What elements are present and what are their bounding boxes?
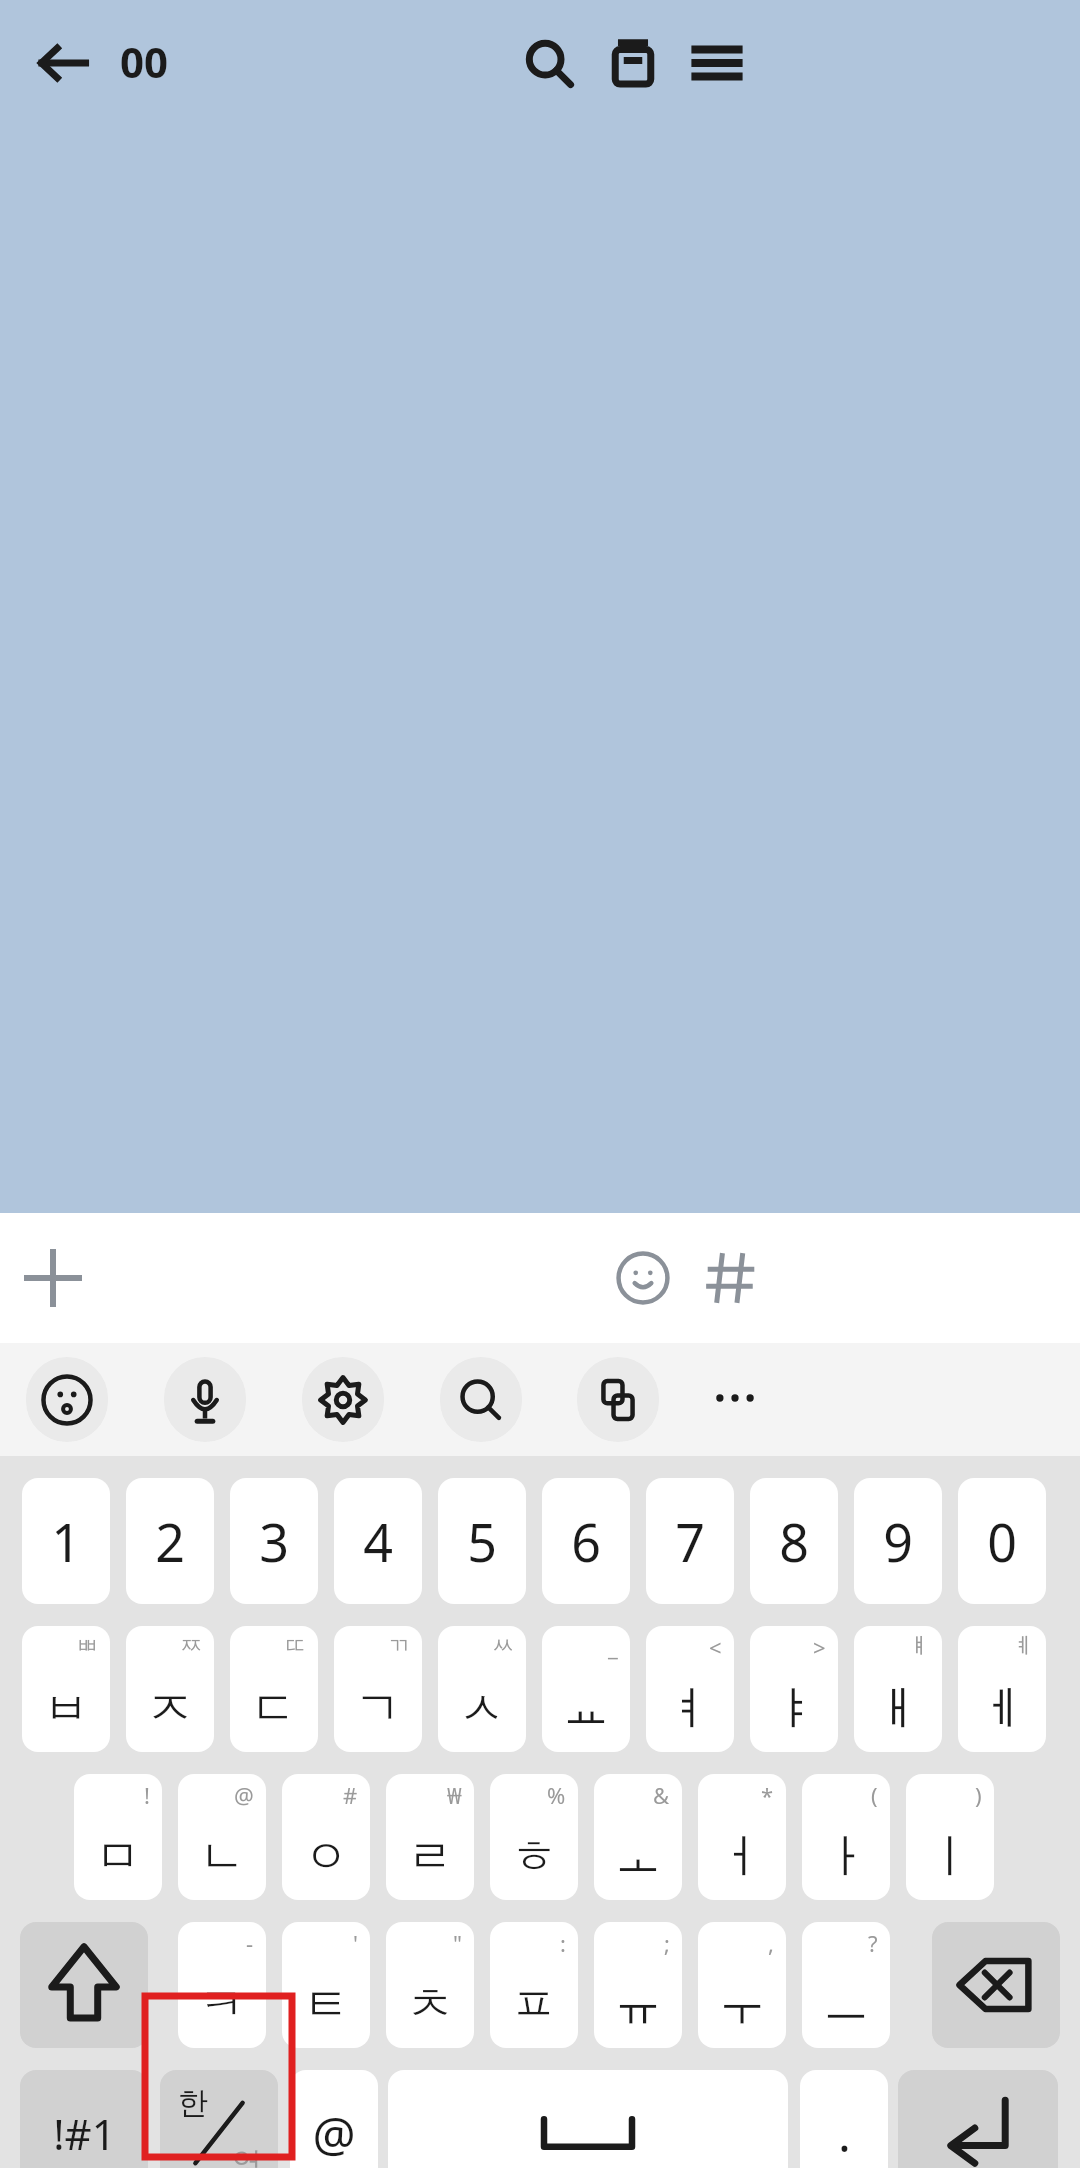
staticText: <: [709, 1632, 722, 1662]
staticText: 2: [155, 1506, 185, 1577]
staticText: ㅜ: [719, 1976, 765, 2034]
staticText: ㅂ: [43, 1680, 89, 1738]
button[interactable]: ㅉ: [126, 1626, 214, 1752]
button[interactable]: ㄸ: [230, 1626, 318, 1752]
button[interactable]: Enter: [898, 2070, 1058, 2168]
button[interactable]: Voice input: [164, 1357, 246, 1442]
button[interactable]: ㅒ: [854, 1626, 942, 1752]
button[interactable]: Space: [388, 2070, 788, 2168]
button[interactable]: 7: [646, 1478, 734, 1604]
staticText: ㅌ: [303, 1976, 349, 2034]
staticText: 4: [363, 1506, 393, 1577]
button[interactable]: 0: [958, 1478, 1046, 1604]
staticText: 7: [675, 1506, 705, 1577]
staticText: 00: [120, 33, 169, 90]
staticText: 8: [779, 1506, 809, 1577]
button[interactable]: -: [178, 1922, 266, 2048]
staticText: ㅛ: [563, 1680, 609, 1738]
button[interactable]: Back: [22, 22, 104, 104]
staticText: 0: [987, 1506, 1017, 1577]
staticText: ㅅ: [459, 1680, 505, 1738]
staticText: 영: [232, 2144, 262, 2168]
staticText: ㅇ: [303, 1828, 349, 1886]
staticText: ): [975, 1780, 982, 1810]
button[interactable]: 1: [22, 1478, 110, 1604]
button[interactable]: (: [802, 1774, 890, 1900]
staticText: ㅃ: [76, 1632, 98, 1660]
staticText: >: [813, 1632, 826, 1662]
staticText: ㅑ: [771, 1680, 817, 1738]
button[interactable]: ": [386, 1922, 474, 2048]
staticText: ㄴ: [199, 1828, 245, 1886]
button[interactable]: 2: [126, 1478, 214, 1604]
staticText: ㅁ: [95, 1828, 141, 1886]
staticText: ㅋ: [199, 1976, 245, 2034]
button[interactable]: *: [698, 1774, 786, 1900]
button[interactable]: .: [800, 2070, 888, 2168]
button[interactable]: ㄲ: [334, 1626, 422, 1752]
button[interactable]: &: [594, 1774, 682, 1900]
button[interactable]: :: [490, 1922, 578, 2048]
button[interactable]: Translate: [577, 1357, 659, 1442]
button[interactable]: Search: [440, 1357, 522, 1442]
button[interactable]: Settings: [302, 1357, 384, 1442]
button[interactable]: %: [490, 1774, 578, 1900]
staticText: ㅡ: [823, 1976, 869, 2034]
button[interactable]: 6: [542, 1478, 630, 1604]
staticText: %: [547, 1780, 566, 1810]
button[interactable]: Shift: [20, 1922, 148, 2048]
button[interactable]: Menu: [676, 22, 758, 104]
button[interactable]: Backspace: [932, 1922, 1060, 2048]
button[interactable]: ㅆ: [438, 1626, 526, 1752]
button[interactable]: Hashtag: [690, 1237, 772, 1319]
button[interactable]: ㅖ: [958, 1626, 1046, 1752]
button[interactable]: ': [282, 1922, 370, 2048]
button[interactable]: #: [282, 1774, 370, 1900]
staticText: @: [234, 1780, 254, 1810]
button[interactable]: Emoji: [26, 1357, 108, 1442]
staticText: ㅒ: [908, 1632, 930, 1660]
button[interactable]: !#1: [20, 2070, 148, 2168]
button[interactable]: Emoji: [602, 1237, 684, 1319]
staticText: ㅖ: [1012, 1632, 1034, 1660]
staticText: ,: [768, 1928, 774, 1958]
staticText: ": [453, 1928, 462, 1958]
staticText: ㄹ: [407, 1828, 453, 1886]
staticText: ㅔ: [979, 1680, 1025, 1738]
button[interactable]: ): [906, 1774, 994, 1900]
button[interactable]: Add: [12, 1237, 94, 1319]
button[interactable]: 5: [438, 1478, 526, 1604]
button[interactable]: ㅃ: [22, 1626, 110, 1752]
staticText: 3: [259, 1506, 289, 1577]
staticText: -: [246, 1928, 254, 1958]
button[interactable]: Search: [508, 22, 590, 104]
staticText: @: [312, 2101, 356, 2166]
button[interactable]: _: [542, 1626, 630, 1752]
button[interactable]: Archive: [592, 22, 674, 104]
staticText: ㅈ: [147, 1680, 193, 1738]
button[interactable]: @: [178, 1774, 266, 1900]
button[interactable]: <: [646, 1626, 734, 1752]
staticText: .: [838, 2101, 851, 2166]
button[interactable]: More options: [694, 1357, 776, 1439]
button[interactable]: ;: [594, 1922, 682, 2048]
button[interactable]: >: [750, 1626, 838, 1752]
staticText: ': [353, 1928, 358, 1958]
staticText: ₩: [447, 1780, 462, 1810]
button[interactable]: 8: [750, 1478, 838, 1604]
button[interactable]: @: [290, 2070, 378, 2168]
button[interactable]: ?: [802, 1922, 890, 2048]
staticText: ㅐ: [875, 1680, 921, 1738]
button[interactable]: 3: [230, 1478, 318, 1604]
staticText: 6: [571, 1506, 601, 1577]
button[interactable]: !: [74, 1774, 162, 1900]
button[interactable]: 9: [854, 1478, 942, 1604]
button[interactable]: 한: [160, 2070, 278, 2168]
button[interactable]: ,: [698, 1922, 786, 2048]
staticText: ㅗ: [615, 1828, 661, 1886]
staticText: ㅊ: [407, 1976, 453, 2034]
button[interactable]: ₩: [386, 1774, 474, 1900]
button[interactable]: 4: [334, 1478, 422, 1604]
staticText: 한: [178, 2084, 208, 2122]
staticText: ㅎ: [511, 1828, 557, 1886]
